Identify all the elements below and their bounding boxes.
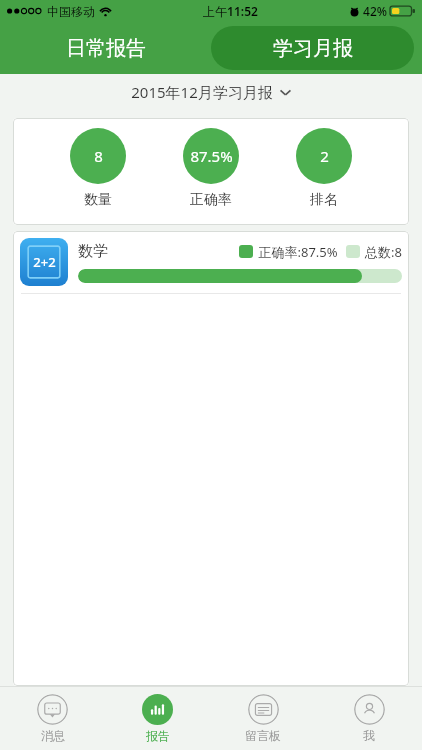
staticText: 2015年12月学习月报 xyxy=(131,82,273,102)
staticText: 消息 xyxy=(41,728,65,743)
staticText: 中国移动 xyxy=(47,4,95,19)
staticText: 正确率:87.5% xyxy=(258,243,338,261)
button[interactable]: 报告 xyxy=(105,687,210,750)
staticText: 87.5% xyxy=(190,146,233,166)
button[interactable]: 消息 xyxy=(0,687,105,750)
staticText: 数学 xyxy=(78,242,108,261)
staticText: 42% xyxy=(363,3,387,19)
staticText: 2+2 xyxy=(33,253,56,271)
staticText: 上午11:52 xyxy=(203,3,258,19)
staticText: 2 xyxy=(320,146,329,166)
button[interactable]: 学习月报 xyxy=(211,26,414,70)
button[interactable]: 留言板 xyxy=(210,687,316,750)
staticText: 学习月报 xyxy=(273,36,353,61)
staticText: 留言板 xyxy=(245,728,281,743)
staticText: 8 xyxy=(94,146,103,166)
staticText: 我 xyxy=(363,728,375,743)
button[interactable]: 2+2 xyxy=(13,231,409,293)
button[interactable]: 我 xyxy=(316,687,422,750)
staticText: 报告 xyxy=(146,728,170,743)
staticText: 排名 xyxy=(310,191,338,209)
button[interactable]: 2015年12月学习月报 xyxy=(0,74,422,110)
staticText: 正确率 xyxy=(190,191,232,209)
staticText: 总数:8 xyxy=(365,243,402,261)
staticText: 日常报告 xyxy=(66,36,146,61)
button[interactable]: 日常报告 xyxy=(0,22,211,74)
staticText: 数量 xyxy=(84,191,112,209)
